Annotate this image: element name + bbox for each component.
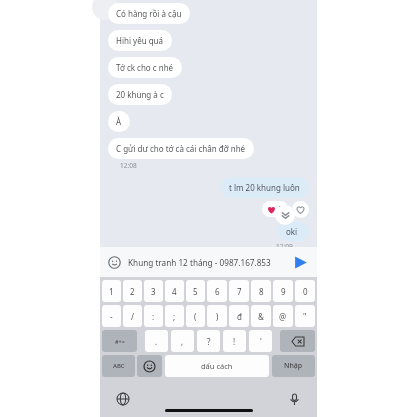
- button[interactable]: @: [273, 305, 293, 327]
- staticText: dấu cách: [201, 361, 233, 371]
- staticText: 7: [237, 286, 242, 297]
- button[interactable]: Emoji keyboard: [137, 355, 162, 377]
- staticText: Khung tranh 12 tháng - 0987.167.853: [128, 257, 271, 268]
- button[interactable]: 1: [262, 201, 288, 217]
- staticText: C gửi dư cho tớ cà cái chân đỡ nhé: [116, 143, 246, 154]
- staticText: :: [152, 311, 155, 322]
- button[interactable]: 8: [251, 280, 271, 302]
- button[interactable]: Emoji: [107, 255, 122, 270]
- button[interactable]: đ: [229, 305, 249, 327]
- button[interactable]: .: [145, 330, 168, 352]
- button[interactable]: Send: [290, 252, 310, 272]
- button[interactable]: 4: [165, 280, 184, 302]
- button[interactable]: 0: [295, 280, 315, 302]
- staticText: Tớ ck cho c nhé: [116, 62, 174, 73]
- button[interactable]: 20 khung à c: [108, 84, 172, 105]
- staticText: 6: [215, 286, 220, 297]
- staticText: 1: [278, 204, 283, 214]
- button[interactable]: ,: [171, 330, 194, 352]
- button[interactable]: -: [102, 305, 121, 327]
- button[interactable]: 3: [144, 280, 163, 302]
- staticText: ': [260, 336, 262, 347]
- button[interactable]: Scroll to bottom: [275, 205, 295, 225]
- button[interactable]: :: [144, 305, 163, 327]
- button[interactable]: ABC: [102, 355, 135, 377]
- staticText: ": [303, 311, 307, 322]
- staticText: -: [110, 311, 113, 322]
- button[interactable]: dấu cách: [165, 355, 269, 377]
- button[interactable]: ?: [197, 330, 220, 352]
- staticText: 12:08: [120, 161, 137, 170]
- staticText: ): [216, 311, 219, 322]
- staticText: Nhập: [284, 361, 303, 371]
- button[interactable]: Nhập: [272, 355, 315, 377]
- button[interactable]: ": [295, 305, 315, 327]
- staticText: .: [155, 336, 158, 347]
- staticText: /: [131, 311, 134, 322]
- staticText: (: [194, 311, 197, 322]
- staticText: 20 khung à c: [116, 89, 164, 100]
- staticText: 2: [130, 286, 135, 297]
- button[interactable]: Khung tranh 12 tháng - 0987.167.853: [128, 257, 286, 268]
- button[interactable]: ': [249, 330, 272, 352]
- button[interactable]: 2: [123, 280, 142, 302]
- button[interactable]: ;: [165, 305, 184, 327]
- staticText: À: [116, 116, 122, 127]
- staticText: đ: [237, 311, 242, 322]
- staticText: 0: [303, 286, 308, 297]
- button[interactable]: !: [223, 330, 246, 352]
- staticText: &: [258, 311, 264, 322]
- staticText: !: [233, 336, 236, 347]
- button[interactable]: 1: [102, 280, 121, 302]
- button[interactable]: 6: [207, 280, 227, 302]
- staticText: 8: [259, 286, 264, 297]
- button[interactable]: Voice input: [285, 390, 303, 408]
- button[interactable]: 9: [273, 280, 293, 302]
- staticText: 9: [281, 286, 286, 297]
- button[interactable]: &: [251, 305, 271, 327]
- button[interactable]: C gửi dư cho tớ cà cái chân đỡ nhé: [108, 138, 254, 159]
- button[interactable]: React with heart: [292, 201, 309, 218]
- staticText: oki: [286, 226, 300, 237]
- button[interactable]: oki: [277, 222, 309, 241]
- staticText: 5: [193, 286, 198, 297]
- staticText: 4: [172, 286, 177, 297]
- staticText: 3: [151, 286, 156, 297]
- button[interactable]: 7: [229, 280, 249, 302]
- staticText: ,: [181, 336, 184, 347]
- button[interactable]: t lm 20 khung luôn: [220, 177, 309, 198]
- button[interactable]: Change language: [114, 390, 132, 408]
- staticText: ABC: [113, 362, 125, 370]
- staticText: 12:09: [276, 242, 293, 247]
- button[interactable]: /: [123, 305, 142, 327]
- button[interactable]: (: [186, 305, 205, 327]
- button[interactable]: Backspace: [280, 330, 315, 352]
- staticText: t lm 20 khung luôn: [229, 182, 300, 193]
- staticText: @: [279, 311, 287, 322]
- button[interactable]: Có hàng rồi à cậu: [108, 3, 190, 24]
- button[interactable]: À: [108, 111, 130, 132]
- staticText: 1: [109, 286, 114, 297]
- staticText: ;: [173, 311, 176, 322]
- button[interactable]: Tớ ck cho c nhé: [108, 57, 182, 78]
- button[interactable]: Hihi yêu quá: [108, 30, 172, 51]
- button[interactable]: 5: [186, 280, 205, 302]
- staticText: Có hàng rồi à cậu: [116, 8, 182, 19]
- staticText: #+=: [115, 338, 125, 345]
- staticText: ?: [207, 336, 211, 347]
- button[interactable]: ): [207, 305, 227, 327]
- button[interactable]: #+=: [102, 330, 137, 352]
- staticText: Hihi yêu quá: [116, 35, 164, 46]
